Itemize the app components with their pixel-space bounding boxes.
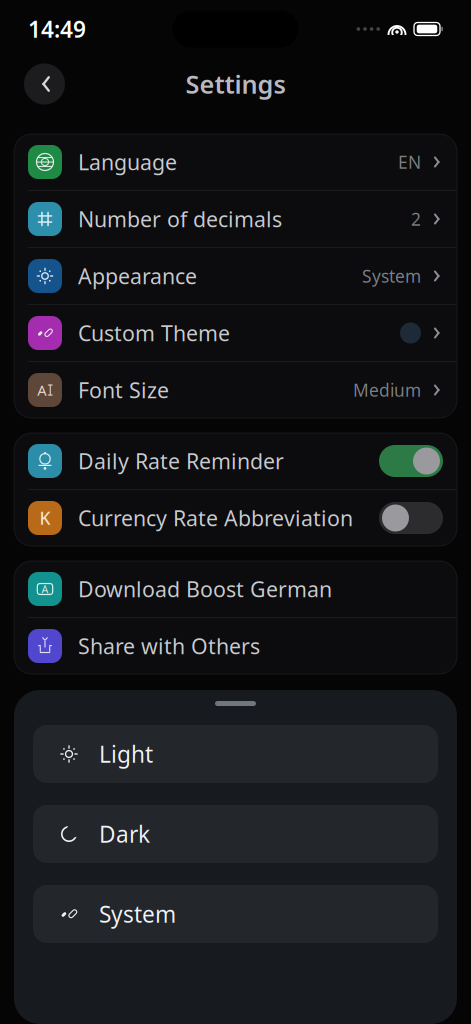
button[interactable]: Enabled: [379, 445, 443, 477]
staticText: Daily Rate Reminder: [78, 447, 284, 475]
staticText: A: [37, 380, 46, 400]
staticText: Language: [78, 148, 177, 176]
button[interactable]: Custom Theme: [14, 305, 457, 361]
staticText: EN: [398, 150, 421, 173]
staticText: Font Size: [78, 376, 169, 404]
staticText: Settings: [185, 67, 285, 101]
staticText: K: [39, 506, 50, 529]
staticText: Custom Theme: [78, 319, 230, 347]
staticText: Dark: [99, 819, 150, 849]
staticText: Number of decimals: [78, 205, 282, 233]
staticText: Medium: [353, 378, 421, 401]
button[interactable]: Dark: [33, 805, 438, 863]
staticText: Download Boost German: [78, 575, 332, 603]
button[interactable]: Light: [33, 725, 438, 783]
staticText: 14:49: [28, 14, 86, 44]
button[interactable]: K: [14, 490, 457, 546]
staticText: System: [99, 899, 176, 929]
button[interactable]: Back: [24, 63, 65, 104]
button[interactable]: System: [33, 885, 438, 943]
staticText: Appearance: [78, 262, 197, 290]
staticText: 2: [411, 207, 421, 230]
staticText: A: [41, 582, 48, 596]
button[interactable]: Share with Others: [14, 618, 457, 674]
staticText: Share with Others: [78, 632, 260, 660]
button[interactable]: Disabled: [379, 502, 443, 534]
button[interactable]: Daily Rate Reminder: [14, 433, 457, 489]
button[interactable]: Number of decimals: [14, 191, 457, 247]
button[interactable]: Appearance: [14, 248, 457, 304]
button[interactable]: A: [14, 561, 457, 617]
button[interactable]: Language: [14, 134, 457, 190]
staticText: Currency Rate Abbreviation: [78, 504, 353, 532]
button[interactable]: A: [14, 362, 457, 418]
staticText: System: [362, 264, 421, 287]
staticText: Light: [99, 739, 153, 769]
